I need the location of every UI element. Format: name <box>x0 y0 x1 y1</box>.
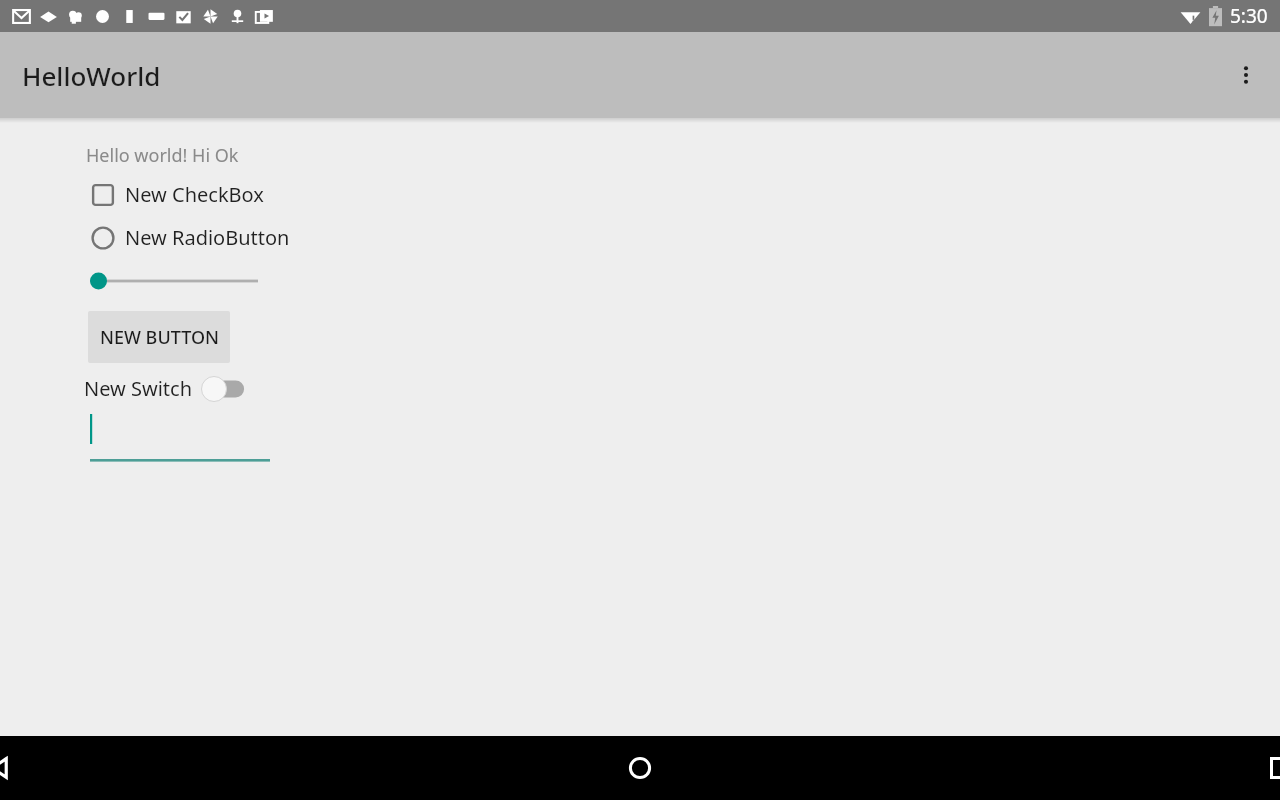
staticText: New Switch <box>84 375 193 402</box>
button[interactable]: Text input <box>90 410 270 464</box>
button[interactable]: NEW BUTTON <box>88 311 230 363</box>
button[interactable]: Home <box>426 736 853 800</box>
button[interactable]: Recent apps <box>853 736 1280 800</box>
button[interactable]: New RadioButton <box>90 224 290 251</box>
staticText: 5:30 <box>1230 3 1268 29</box>
button[interactable]: Back <box>0 736 426 800</box>
staticText: HelloWorld <box>22 58 161 93</box>
staticText: New CheckBox <box>125 181 264 208</box>
staticText: NEW BUTTON <box>100 325 219 350</box>
button[interactable]: Slider <box>90 267 258 295</box>
staticText: Hello world! Hi Ok <box>86 143 239 168</box>
button[interactable]: New CheckBox <box>90 181 264 208</box>
button[interactable]: New Switch <box>84 375 245 402</box>
staticText: New RadioButton <box>125 224 290 251</box>
button[interactable]: More options <box>1222 51 1270 99</box>
